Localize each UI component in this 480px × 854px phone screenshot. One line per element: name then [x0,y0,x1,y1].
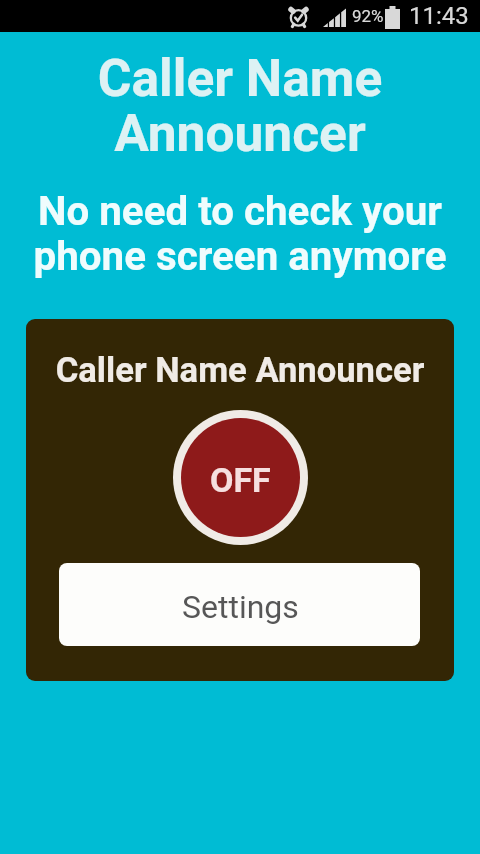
staticText: OFF [210,460,271,500]
staticText: Caller Name Announcer [0,48,480,164]
staticText: Caller Name Announcer [26,350,454,391]
other: Signal strength [323,8,346,27]
button[interactable]: Settings [59,563,420,646]
staticText: 11:43 [409,2,469,30]
staticText: 92% [352,6,384,26]
button[interactable]: OFF [173,410,308,545]
staticText: No need to check your phone screen anymo… [0,188,480,280]
staticText: Settings [182,588,299,626]
other: Battery 92 percent [385,6,400,29]
other: Alarm [288,6,309,26]
